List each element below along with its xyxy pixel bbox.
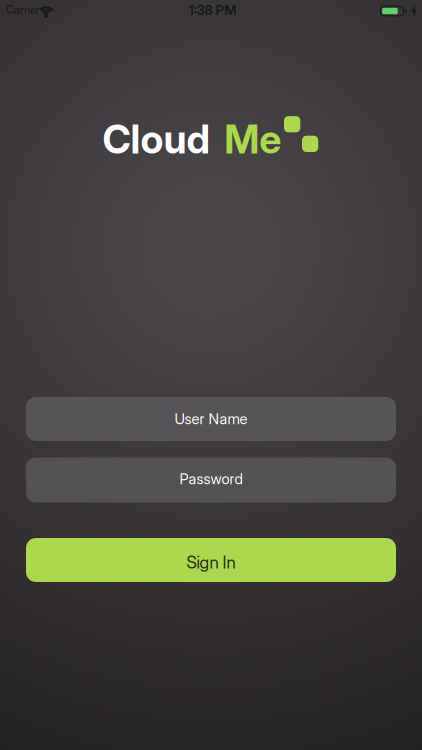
staticText: User Name — [174, 410, 247, 428]
staticText: Password — [179, 470, 242, 488]
staticText: 1:38 PM — [188, 2, 236, 18]
staticText: Carrier — [6, 3, 40, 16]
staticText: Cloud — [102, 116, 210, 163]
staticText: Sign In — [186, 552, 235, 573]
button[interactable]: Sign In — [26, 538, 396, 582]
staticText: Me — [224, 116, 281, 163]
button[interactable]: Password — [26, 457, 396, 502]
button[interactable]: User Name — [26, 397, 396, 441]
